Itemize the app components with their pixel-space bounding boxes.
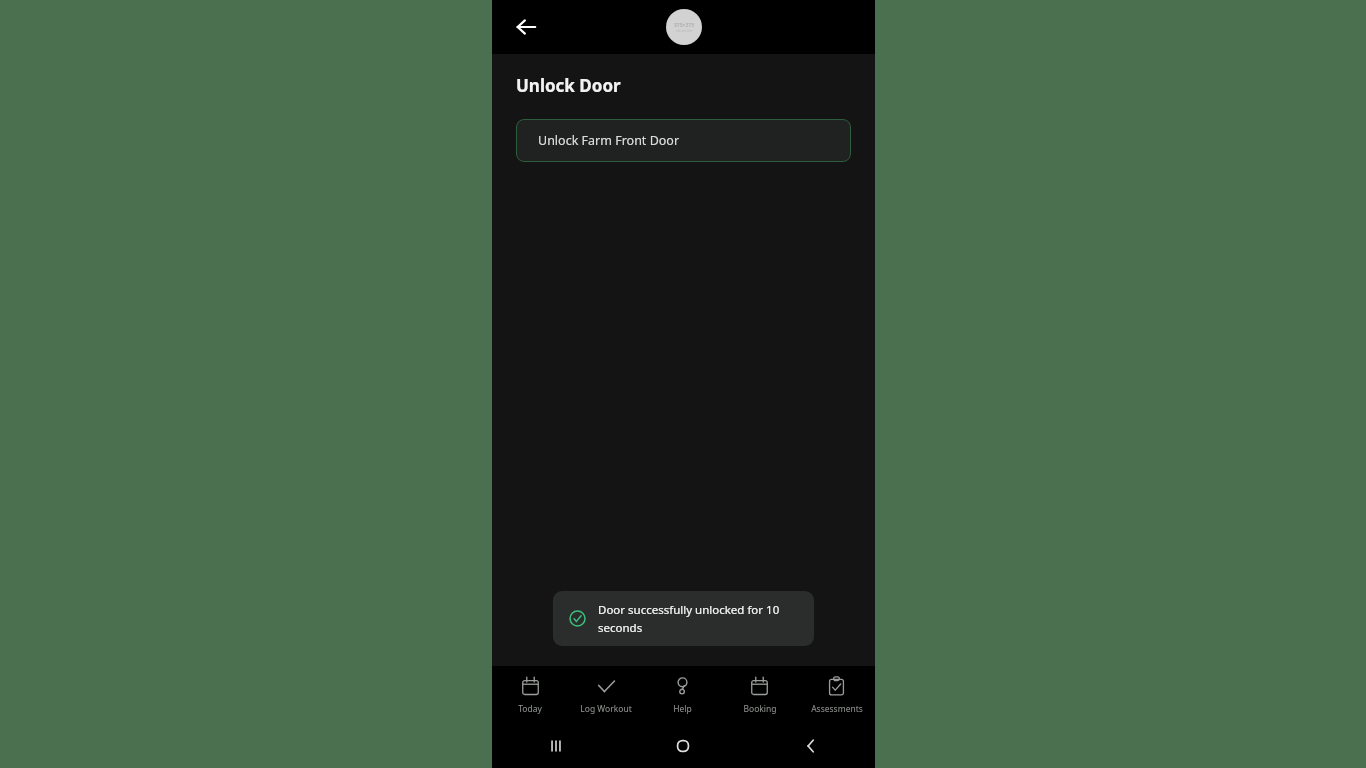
staticText: Today <box>518 703 542 715</box>
button[interactable]: Back <box>747 724 875 768</box>
staticText: Booking <box>743 703 777 715</box>
button[interactable]: Booking <box>721 666 798 724</box>
staticText: placeholder <box>676 29 693 33</box>
button[interactable]: Help <box>644 666 721 724</box>
button[interactable]: Recents <box>492 724 619 768</box>
staticText: Unlock Door <box>516 74 621 97</box>
button[interactable]: Unlock Farm Front Door <box>516 119 851 162</box>
staticText: Help <box>673 703 692 715</box>
staticText: Unlock Farm Front Door <box>538 132 680 149</box>
staticText: Log Workout <box>580 703 632 715</box>
button[interactable]: Door successfully unlocked for 10 second… <box>553 591 814 646</box>
staticText: 375×375 <box>674 22 695 29</box>
button[interactable]: Today <box>492 666 568 724</box>
button[interactable]: Profile <box>666 9 702 45</box>
staticText: Door successfully unlocked for 10 second… <box>598 602 798 635</box>
button[interactable]: Home <box>619 724 747 768</box>
button[interactable]: Log Workout <box>568 666 644 724</box>
button[interactable]: Assessments <box>798 666 875 724</box>
button[interactable]: Back <box>506 7 546 47</box>
staticText: Assessments <box>811 703 863 715</box>
